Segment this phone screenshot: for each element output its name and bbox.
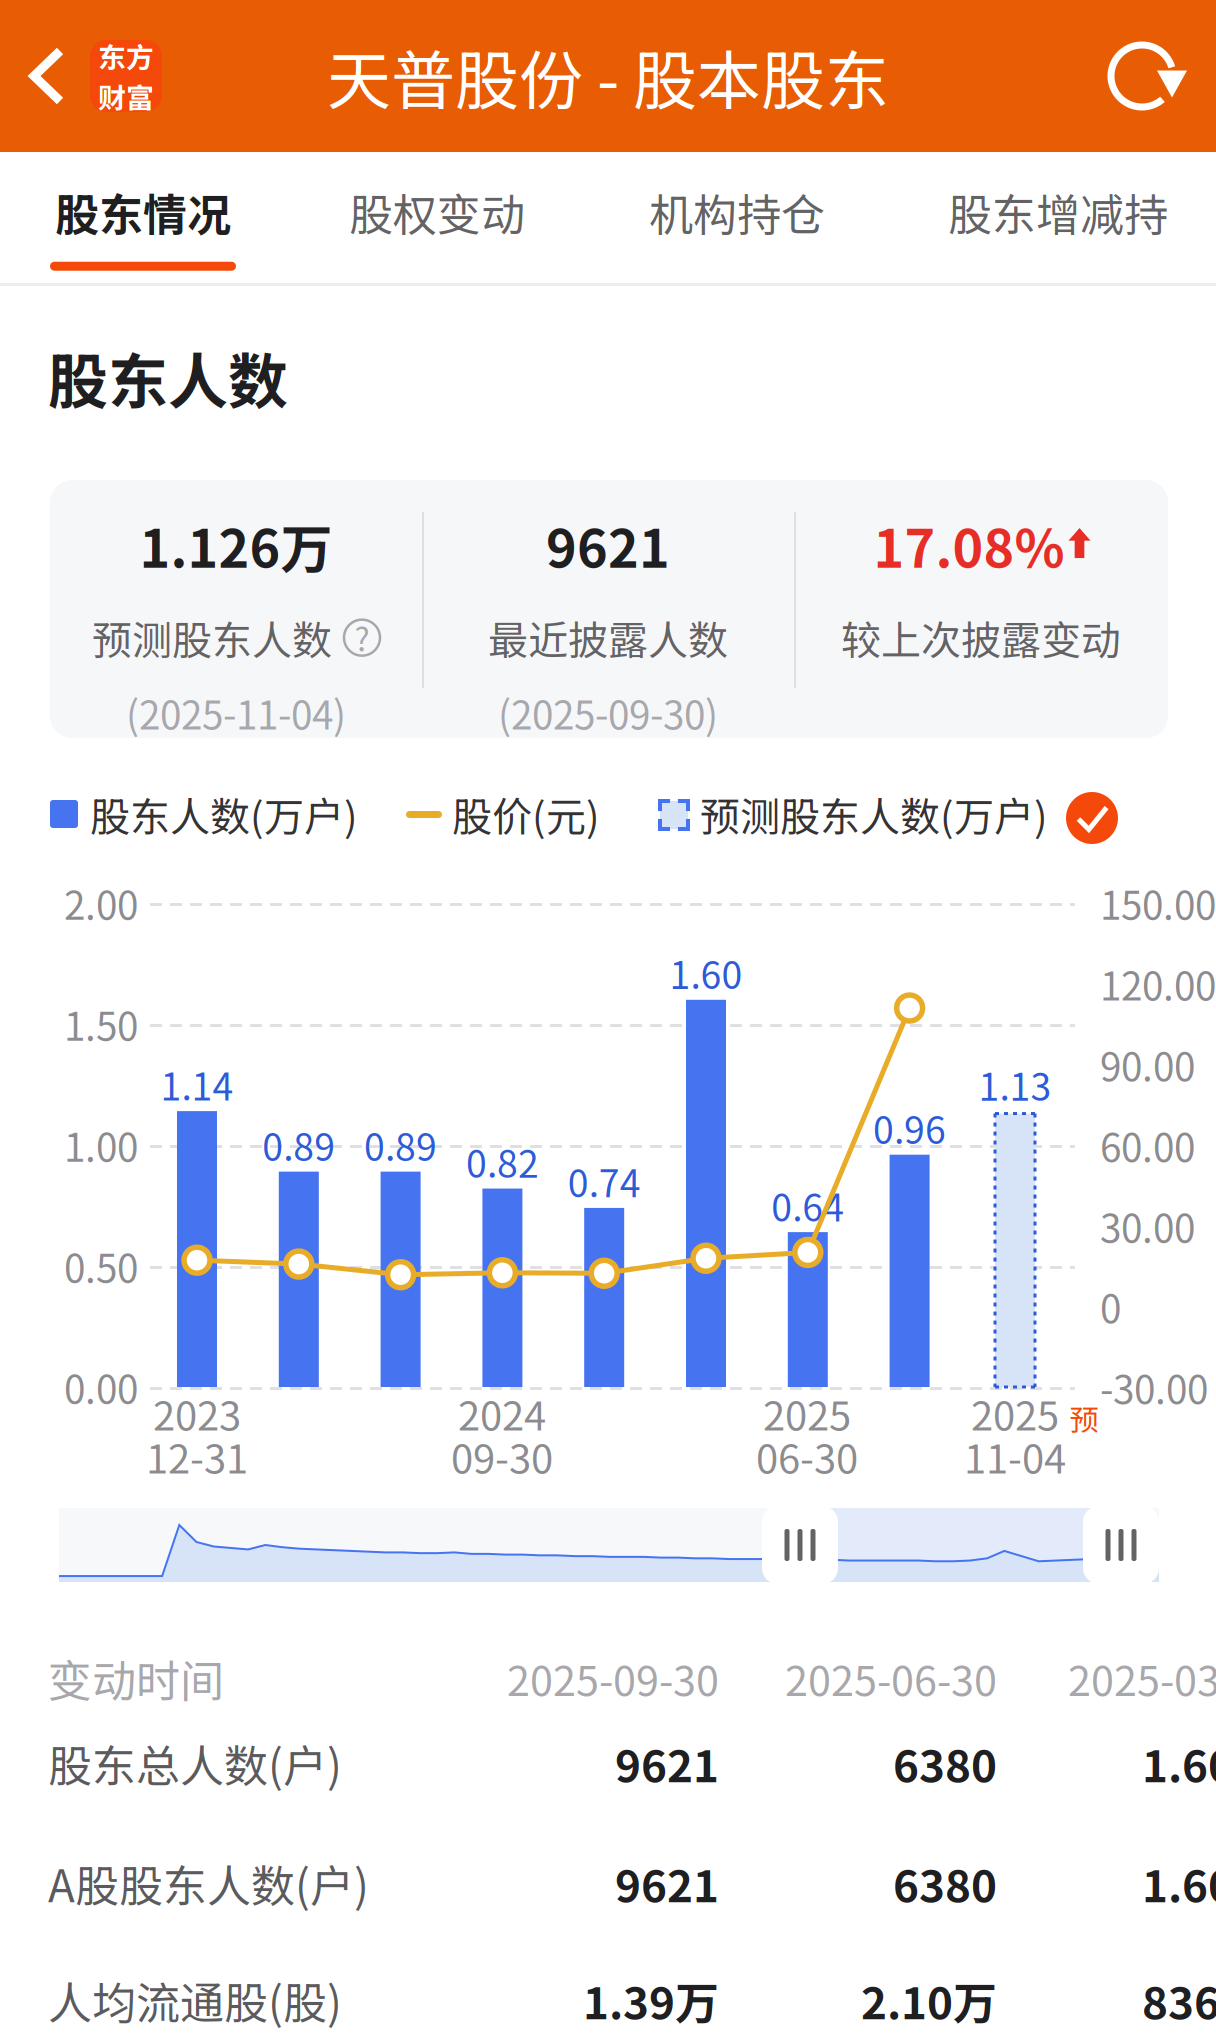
staticText: 1.60万 (1142, 1851, 1216, 1915)
staticText: 1.14 (160, 1057, 233, 1111)
staticText: 1.00 (64, 1117, 138, 1173)
button[interactable]: 股权变动 (319, 152, 555, 283)
staticText: 天普股份 - 股本股东 (327, 30, 889, 122)
staticText: 股东增减持 (948, 180, 1168, 244)
staticText: 30.00 (1100, 1198, 1195, 1254)
staticText: 6380 (893, 1731, 997, 1795)
staticText: 1.60万 (1142, 1731, 1216, 1795)
staticText: 8363 (1142, 1968, 1216, 2032)
staticText: 09-30 (451, 1427, 553, 1485)
staticText: 11-04 (964, 1427, 1066, 1485)
staticText: 1.60 (669, 946, 742, 1000)
staticText: 2025-06-30 (785, 1648, 997, 1708)
staticText: 12-31 (146, 1427, 248, 1485)
staticText: 较上次披露变动 (841, 609, 1121, 667)
button[interactable]: 股东情况 (25, 152, 261, 283)
button[interactable]: 结束范围 (1083, 1506, 1159, 1584)
button[interactable]: 股东增减持 (916, 152, 1200, 283)
staticText: 0.64 (771, 1178, 844, 1232)
button[interactable]: 显示预测股东人数 (1064, 790, 1120, 846)
staticText: 1.39万 (583, 1968, 719, 2032)
staticText: 0.74 (568, 1154, 641, 1208)
staticText: 2025 (763, 1384, 851, 1442)
staticText: 变动时间 (48, 1646, 224, 1710)
button[interactable]: 起始范围 (762, 1506, 838, 1584)
staticText: 0.82 (466, 1134, 539, 1189)
staticText: 预 (1069, 1397, 1098, 1439)
staticText: 东方 财富 (98, 35, 154, 117)
staticText: -30.00 (1100, 1359, 1208, 1415)
staticText: 1.13 (978, 1057, 1051, 1112)
staticText: 股价(元) (452, 785, 600, 843)
staticText: 0.00 (64, 1359, 138, 1415)
staticText: 股东情况 (55, 180, 231, 244)
staticText: 预测股东人数 (92, 609, 332, 667)
button[interactable]: 返回 (0, 0, 250, 152)
staticText: 9621 (615, 1731, 719, 1795)
staticText: 1.126万 (139, 507, 332, 583)
staticText: (2025-11-04) (126, 685, 346, 741)
staticText: 0.89 (262, 1118, 335, 1172)
staticText: 0.89 (364, 1118, 437, 1172)
staticText: 0.50 (64, 1238, 138, 1294)
staticText: (2025-09-30) (498, 685, 718, 741)
staticText: A股股东人数(户) (48, 1851, 369, 1915)
staticText: 股东人数 (48, 334, 288, 421)
staticText: ? (354, 614, 369, 661)
staticText: 2.10万 (861, 1968, 997, 2032)
staticText: 预测股东人数(万户) (700, 785, 1048, 843)
staticText: 9621 (615, 1851, 719, 1915)
staticText: 机构持仓 (649, 180, 825, 244)
staticText: 0.96 (873, 1101, 946, 1155)
staticText: 120.00 (1100, 956, 1216, 1012)
staticText: 06-30 (756, 1427, 858, 1485)
staticText: 17.08% (873, 507, 1064, 583)
staticText: 2024 (458, 1384, 546, 1442)
staticText: 9621 (546, 507, 670, 583)
staticText: 2.00 (64, 875, 138, 931)
staticText: 股权变动 (349, 180, 525, 244)
staticText: 1.50 (64, 996, 138, 1052)
staticText: 2025-09-30 (507, 1648, 719, 1708)
staticText: 最近披露人数 (488, 609, 728, 667)
button[interactable]: 刷新 (1068, 0, 1216, 152)
staticText: 150.00 (1100, 875, 1216, 931)
staticText: 0 (1100, 1278, 1121, 1334)
staticText: 2025 (971, 1384, 1059, 1442)
staticText: 2025-03-31 (1068, 1648, 1216, 1708)
staticText: 90.00 (1100, 1036, 1195, 1092)
staticText: 2023 (153, 1384, 241, 1442)
button[interactable]: 机构持仓 (619, 152, 855, 283)
staticText: 6380 (893, 1851, 997, 1915)
staticText: 股东人数(万户) (90, 785, 358, 843)
staticText: 股东总人数(户) (48, 1731, 342, 1795)
staticText: 人均流通股(股) (48, 1968, 342, 2032)
staticText: 60.00 (1100, 1117, 1195, 1173)
